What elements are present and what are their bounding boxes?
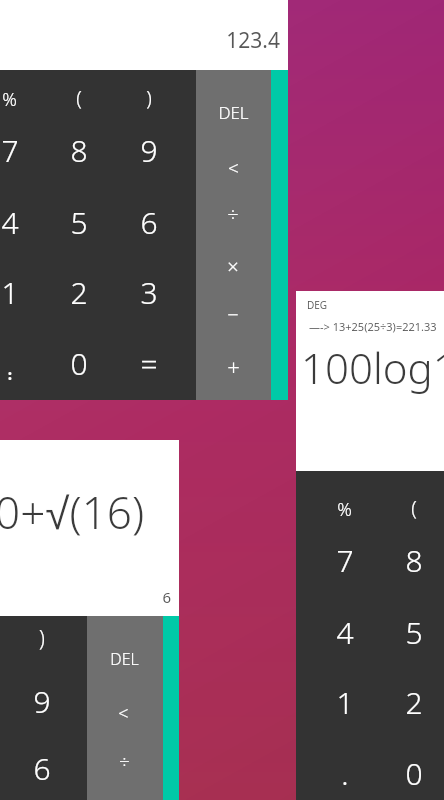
button[interactable]: 6	[113, 194, 185, 251]
staticText: 7	[336, 540, 354, 581]
staticText: 2	[70, 272, 88, 313]
staticText: <	[118, 701, 129, 726]
button[interactable]: 2	[43, 264, 115, 321]
button[interactable]: =	[113, 335, 185, 392]
staticText: .	[6, 343, 14, 384]
button[interactable]: 7	[309, 532, 381, 589]
button[interactable]: 8	[378, 532, 444, 589]
staticText: 6	[140, 202, 158, 243]
button[interactable]: 0	[378, 745, 444, 800]
button[interactable]: 1	[309, 674, 381, 731]
button[interactable]: 1	[0, 264, 46, 321]
staticText: ÷	[119, 748, 130, 774]
button[interactable]: .	[309, 745, 381, 800]
button[interactable]: Backspace	[102, 696, 145, 730]
staticText: 5	[70, 202, 88, 243]
button[interactable]: (	[55, 78, 103, 116]
staticText: 10+√(16)	[0, 482, 145, 542]
button[interactable]: Backspace	[210, 150, 256, 186]
staticText: 4	[336, 612, 354, 653]
button[interactable]: 4	[309, 604, 381, 661]
button[interactable]: Subtract	[209, 295, 257, 333]
staticText: <	[228, 155, 239, 181]
staticText: 1	[336, 682, 354, 723]
staticText: %	[337, 497, 352, 522]
button[interactable]: 4	[0, 194, 46, 251]
staticText: −	[227, 301, 239, 328]
staticText: DEL	[218, 101, 249, 124]
staticText: %	[2, 87, 17, 112]
button[interactable]: )	[125, 78, 173, 116]
button[interactable]: 0	[43, 335, 115, 392]
button[interactable]: Divide	[209, 195, 257, 233]
staticText: 6	[33, 748, 51, 789]
staticText: 2	[405, 682, 423, 723]
button[interactable]: 8	[43, 122, 115, 179]
staticText: 6	[0, 587, 171, 607]
staticText: 5	[405, 612, 423, 653]
button[interactable]: 5	[378, 604, 444, 661]
staticText: =	[140, 343, 158, 384]
staticText: (	[411, 494, 417, 521]
button[interactable]: Delete all	[105, 644, 143, 674]
button[interactable]: 6	[6, 740, 78, 797]
button[interactable]: Delete all	[213, 96, 254, 128]
staticText: 9	[33, 681, 51, 722]
button[interactable]: 5	[43, 194, 115, 251]
staticText: +	[227, 352, 240, 382]
staticText: 1	[1, 272, 19, 313]
staticText: .	[6, 348, 14, 389]
staticText: 8	[405, 540, 423, 581]
staticText: 0	[70, 343, 88, 384]
staticText: DEG	[307, 298, 328, 312]
staticText: ×	[227, 253, 239, 280]
button[interactable]: )	[17, 618, 67, 658]
staticText: ÷	[227, 201, 239, 228]
button[interactable]: .	[0, 340, 46, 397]
staticText: (	[76, 84, 82, 111]
staticText: .	[341, 753, 349, 794]
staticText: —-> 13+25(25÷3)=221.33	[309, 319, 437, 334]
staticText: 100log10	[301, 339, 444, 396]
button[interactable]: %	[0, 82, 31, 116]
staticText: 8	[70, 130, 88, 171]
button[interactable]: 3	[113, 264, 185, 321]
button[interactable]: 2	[378, 674, 444, 731]
button[interactable]: 9	[6, 673, 78, 730]
staticText: 4	[1, 202, 19, 243]
button[interactable]: (	[390, 488, 438, 526]
button[interactable]: 7	[0, 122, 46, 179]
button[interactable]: %	[323, 492, 366, 526]
staticText: 9	[140, 130, 158, 171]
staticText: 3	[140, 272, 158, 313]
staticText: )	[39, 624, 45, 653]
button[interactable]: 9	[113, 122, 185, 179]
button[interactable]: Add	[207, 346, 260, 388]
staticText: 0	[405, 753, 423, 794]
staticText: 123.4	[0, 26, 280, 55]
staticText: DEL	[110, 648, 139, 670]
staticText: 7	[1, 130, 19, 171]
staticText: )	[146, 84, 152, 111]
button[interactable]: .	[0, 335, 46, 392]
button[interactable]: Divide	[101, 743, 147, 779]
button[interactable]: Multiply	[209, 247, 257, 285]
